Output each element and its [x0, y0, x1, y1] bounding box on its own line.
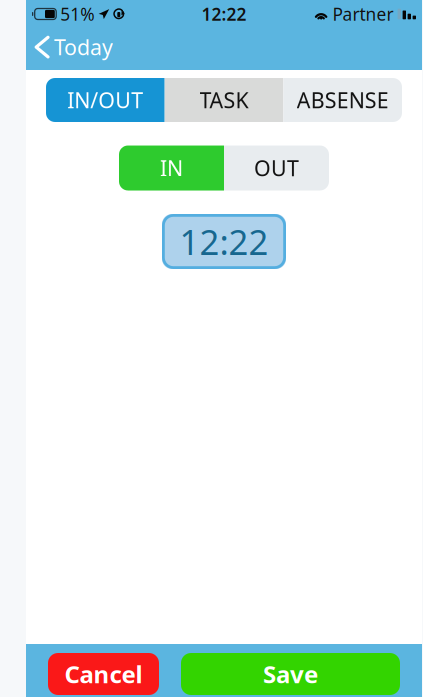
- staticText: IN: [160, 154, 183, 182]
- button[interactable]: ABSENSE: [283, 78, 402, 122]
- staticText: 51%: [60, 2, 94, 25]
- staticText: 12:22: [201, 2, 246, 25]
- staticText: Today: [54, 33, 113, 61]
- staticText: Cancel: [64, 658, 142, 690]
- staticText: ABSENSE: [297, 86, 389, 114]
- staticText: Save: [263, 658, 318, 690]
- staticText: 12:22: [179, 218, 268, 264]
- button[interactable]: Cancel: [48, 653, 159, 695]
- staticText: Partner: [333, 2, 394, 25]
- button[interactable]: 12:22: [162, 214, 286, 269]
- staticText: IN/OUT: [67, 86, 143, 114]
- button[interactable]: Save: [181, 653, 400, 695]
- button[interactable]: TASK: [165, 78, 283, 122]
- staticText: TASK: [199, 86, 248, 114]
- staticText: OUT: [254, 154, 299, 182]
- button[interactable]: OUT: [224, 145, 329, 190]
- button[interactable]: IN: [119, 145, 224, 190]
- button[interactable]: IN/OUT: [46, 78, 165, 122]
- button[interactable]: Today: [26, 27, 113, 67]
